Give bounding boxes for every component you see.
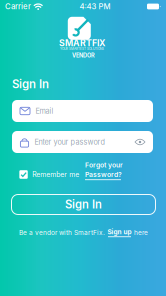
staticText: Carrier: [5, 2, 31, 11]
staticText: VENDOR: [72, 52, 95, 59]
staticText: Enter your password: [34, 138, 104, 146]
staticText: Sign In: [12, 77, 49, 91]
button[interactable]: Sign up: [107, 228, 131, 237]
staticText: Email: [35, 107, 53, 115]
button[interactable]: Remember me: [19, 168, 79, 180]
staticText: Be a vendor with SmartFix.: [19, 228, 105, 236]
staticText: here: [134, 228, 148, 236]
staticText: Sign In: [65, 198, 102, 211]
button[interactable]: Forgot your: [85, 161, 126, 180]
staticText: SMARTFIX: [59, 38, 105, 48]
staticText: Sign up: [107, 228, 131, 236]
button[interactable]: Sign In: [11, 194, 155, 214]
staticText: Forgot your: [85, 161, 123, 169]
staticText: YOUR SMARTEST SOLUTIONS: [60, 47, 104, 51]
staticText: Remember me: [32, 170, 79, 179]
staticText: 4:43 PM: [79, 2, 110, 11]
staticText: Password?: [85, 170, 122, 178]
